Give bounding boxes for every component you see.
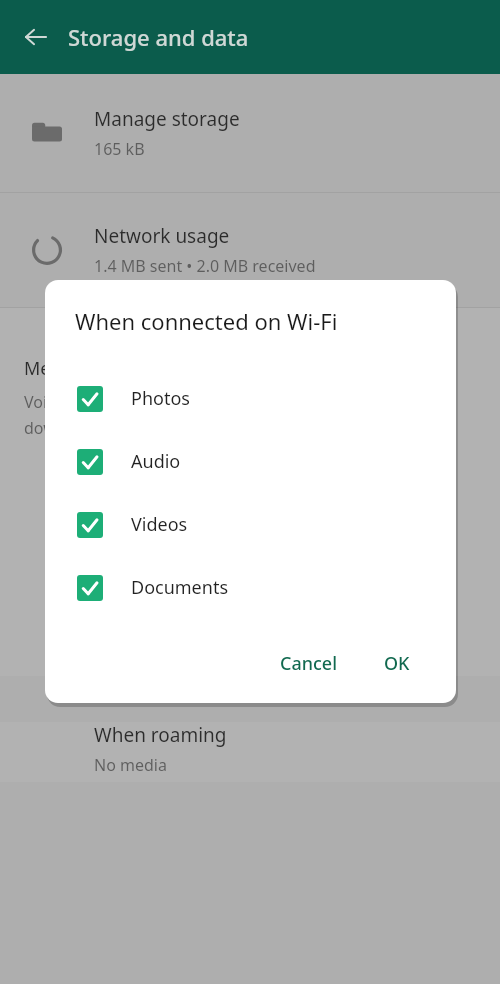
button[interactable]: When connected on Wi-Fi — [0, 596, 500, 676]
staticText: Audio — [131, 449, 181, 474]
button[interactable]: Photos — [45, 367, 456, 430]
staticText: 1.4 MB sent • 2.0 MB received — [94, 255, 316, 277]
staticText: 165 kB — [94, 138, 145, 160]
staticText: Cancel — [280, 651, 338, 676]
button[interactable]: OK — [370, 641, 424, 686]
staticText: Storage and data — [68, 22, 249, 52]
staticText: When roaming — [94, 722, 227, 748]
staticText: Photos — [131, 386, 190, 411]
staticText: Voice messages are always automatically — [24, 391, 332, 413]
button[interactable]: Cancel — [266, 641, 352, 686]
staticText: When connected on Wi-Fi — [75, 306, 338, 336]
button[interactable]: Videos — [45, 493, 456, 556]
staticText: downloaded — [24, 417, 118, 439]
button[interactable]: Manage storage — [0, 74, 500, 192]
button[interactable]: Back — [12, 13, 60, 61]
staticText: No media — [94, 754, 167, 776]
button[interactable]: Network usage — [0, 193, 500, 307]
button[interactable]: Documents — [45, 556, 456, 619]
button[interactable]: Audio — [45, 430, 456, 493]
staticText: Videos — [131, 512, 188, 537]
staticText: Network usage — [94, 223, 230, 249]
staticText: Media auto-download — [24, 356, 209, 381]
button[interactable]: When roaming — [0, 722, 500, 782]
staticText: Manage storage — [94, 106, 240, 132]
staticText: Documents — [131, 575, 229, 600]
staticText: OK — [384, 651, 410, 676]
